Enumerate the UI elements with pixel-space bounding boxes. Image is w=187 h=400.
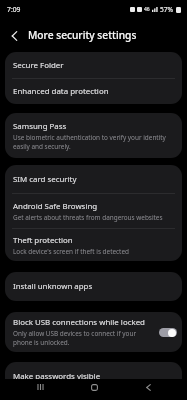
staticText: Get alerts about threats from dangerous … [13, 213, 163, 222]
staticText: 57% [160, 5, 174, 14]
button[interactable]: Navigate up [5, 26, 24, 45]
button[interactable]: Block USB connections while locked toggl… [159, 328, 177, 337]
button[interactable]: Theft protection [5, 229, 182, 261]
button[interactable]: Recent apps [18, 379, 62, 395]
staticText: Samsung Pass [13, 121, 67, 132]
staticText: Make passwords visible [13, 371, 101, 382]
button[interactable]: Samsung Pass [5, 113, 182, 158]
button[interactable]: Enhanced data protection [5, 79, 182, 104]
staticText: Install unknown apps [13, 281, 93, 292]
staticText: Use biometric authentication to verify y… [13, 133, 177, 151]
button[interactable]: Install unknown apps [5, 272, 182, 301]
button[interactable]: Back [126, 379, 170, 395]
button[interactable]: Home [72, 379, 116, 395]
staticText: Secure Folder [13, 60, 64, 71]
button[interactable]: Secure Folder [5, 52, 182, 78]
button[interactable]: Block USB connections while locked [5, 312, 182, 352]
button[interactable]: Make passwords visible [5, 362, 182, 390]
staticText: Only allow USB devices to connect if you… [13, 329, 155, 347]
staticText: 7:09 [7, 5, 21, 14]
staticText: More security settings [28, 28, 137, 42]
staticText: SIM card security [13, 174, 77, 185]
staticText: Theft protection [13, 235, 73, 246]
button[interactable]: Android Safe Browsing [5, 194, 182, 228]
staticText: Block USB connections while locked [13, 317, 145, 328]
button[interactable]: SIM card security [5, 165, 182, 193]
staticText: Android Safe Browsing [13, 201, 98, 212]
staticText: Enhanced data protection [13, 86, 109, 97]
staticText: 46 [144, 6, 150, 13]
staticText: Lock device's screen if theft is detecte… [13, 247, 129, 256]
